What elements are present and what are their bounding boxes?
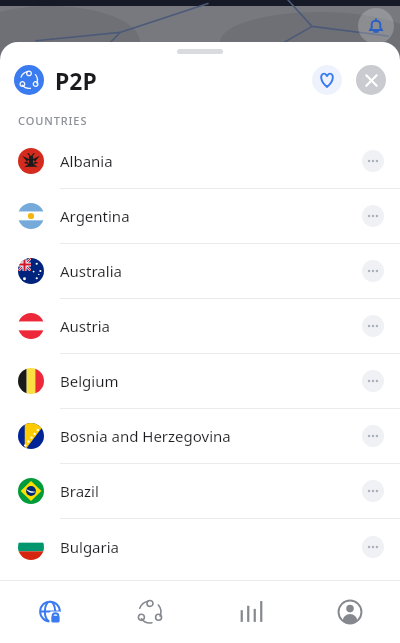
button[interactable]: Close [356,65,386,95]
button[interactable]: Bulgaria [0,519,400,574]
staticText: Bulgaria [60,537,120,557]
staticText: Bosnia and Herzegovina [60,426,231,446]
button[interactable]: Austria [0,299,400,354]
staticText: Australia [60,261,122,281]
staticText: Brazil [60,481,99,501]
button[interactable]: Australia [0,244,400,299]
staticText: Austria [60,316,110,336]
staticText: P2P [55,65,97,96]
button[interactable]: VPN [0,581,100,643]
staticText: Argentina [60,206,130,226]
button[interactable]: Brazil [0,464,400,519]
button[interactable]: More options for Bulgaria [362,536,384,558]
button[interactable]: Profile [300,581,400,643]
button[interactable]: Albania [0,134,400,189]
button[interactable]: More options for Bosnia and Herzegovina [362,425,384,447]
button[interactable]: Belgium [0,354,400,409]
button[interactable]: More options for Brazil [362,480,384,502]
button[interactable]: More options for Australia [362,260,384,282]
staticText: Belgium [60,371,119,391]
button[interactable]: Notifications [358,8,394,44]
button[interactable]: Argentina [0,189,400,244]
staticText: COUNTRIES [18,113,88,128]
button[interactable]: Bosnia and Herzegovina [0,409,400,464]
button[interactable]: More options for Argentina [362,205,384,227]
button[interactable]: More options for Belgium [362,370,384,392]
button[interactable]: More options for Albania [362,150,384,172]
button[interactable]: Favorite [312,65,342,95]
button[interactable]: Stats [200,581,300,643]
button[interactable]: P2P [100,581,200,643]
staticText: Albania [60,151,113,171]
button[interactable]: More options for Austria [362,315,384,337]
